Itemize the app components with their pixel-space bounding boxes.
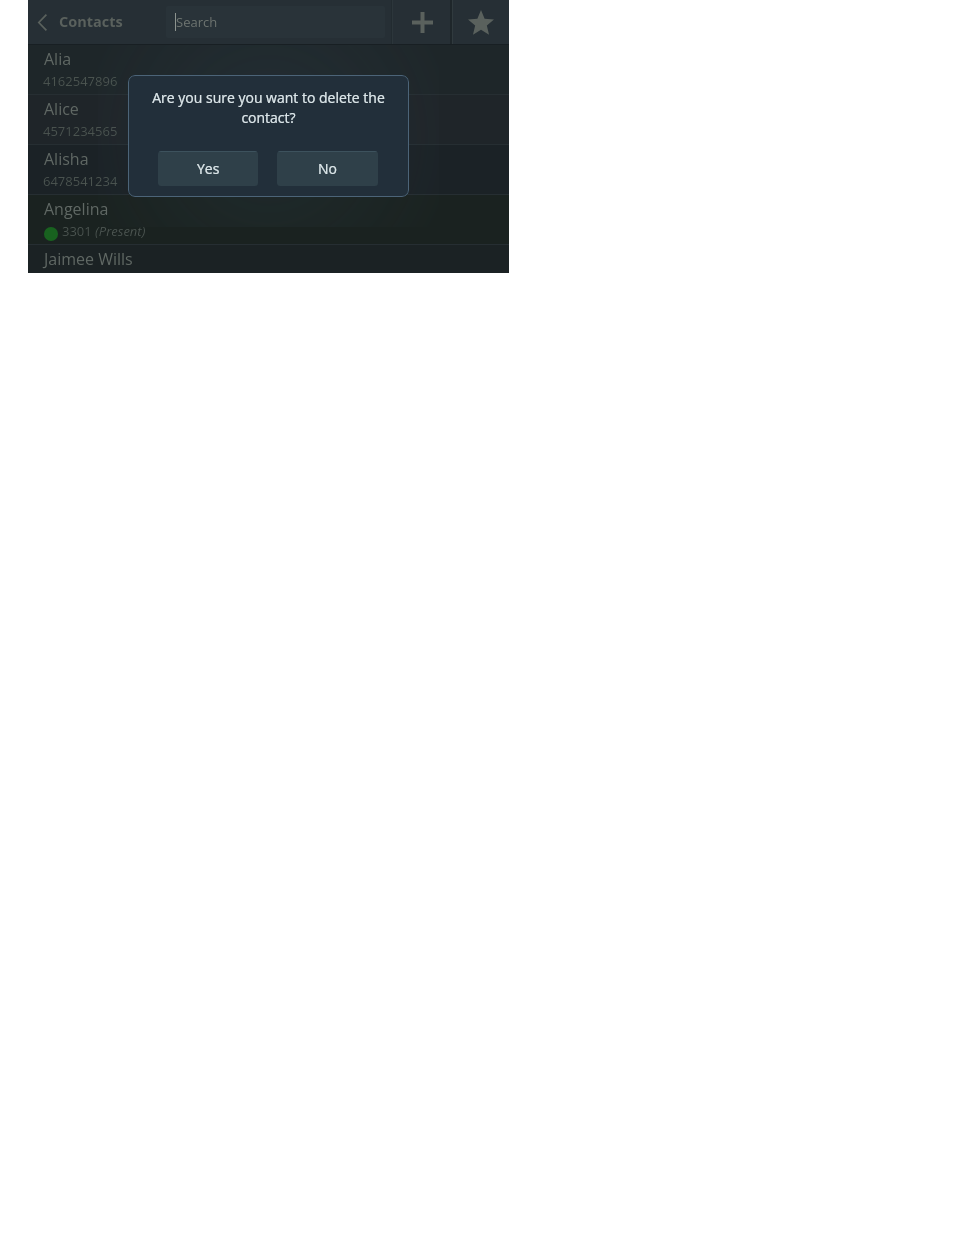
button[interactable]: Alice xyxy=(28,95,509,144)
button[interactable]: Alisha xyxy=(28,145,509,194)
button[interactable]: Contacts xyxy=(28,0,156,44)
staticText: Contacts xyxy=(59,12,123,32)
staticText: Search xyxy=(176,13,218,31)
staticText: Angelina xyxy=(44,198,109,220)
staticText: Alice xyxy=(44,98,79,120)
button[interactable]: Yes xyxy=(158,151,258,186)
button[interactable]: Add contact xyxy=(393,0,452,44)
button[interactable]: Angelina xyxy=(28,195,509,244)
staticText: 4162547896 xyxy=(43,72,118,90)
staticText: Alisha xyxy=(44,148,89,170)
staticText: No xyxy=(318,159,337,178)
button[interactable]: Jaimee Wills xyxy=(28,245,509,273)
staticText: Alia xyxy=(44,48,72,70)
button[interactable]: Favourites xyxy=(453,0,508,44)
staticText: 3301 (Present) xyxy=(62,222,146,240)
staticText: Yes xyxy=(197,159,220,178)
staticText: Jaimee Wills xyxy=(44,248,133,270)
button[interactable]: Search xyxy=(166,6,385,38)
staticText: Are you sure you want to delete the cont… xyxy=(146,88,391,128)
staticText: 4571234565 xyxy=(43,122,118,140)
button[interactable]: Alia xyxy=(28,45,509,94)
button[interactable]: No xyxy=(277,151,378,186)
staticText: 6478541234 xyxy=(43,172,118,190)
